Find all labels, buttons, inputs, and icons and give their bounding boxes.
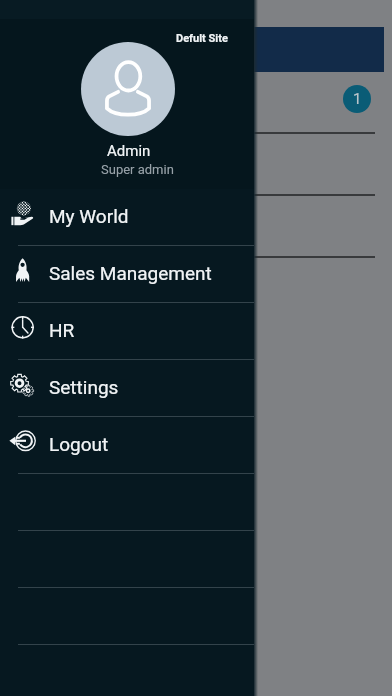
button[interactable]: My World — [0, 189, 254, 246]
button[interactable] — [0, 588, 254, 645]
staticText: Admin — [107, 142, 151, 160]
button[interactable]: Settings — [0, 360, 254, 417]
staticText: Settings — [49, 376, 119, 398]
staticText: 1 — [353, 90, 362, 108]
button[interactable] — [0, 531, 254, 588]
staticText: Defult Site — [176, 32, 228, 45]
button[interactable]: Logout — [0, 417, 254, 474]
staticText: My World — [49, 205, 129, 227]
button[interactable] — [0, 474, 254, 531]
staticText: Super admin — [101, 162, 174, 177]
button[interactable]: Sales Management — [0, 246, 254, 303]
staticText: HR — [49, 319, 75, 341]
staticText: Sales Management — [49, 262, 212, 284]
button[interactable]: Notifications: 1 — [343, 85, 371, 113]
staticText: Logout — [49, 433, 109, 455]
button[interactable] — [0, 27, 384, 72]
button[interactable]: HR — [0, 303, 254, 360]
